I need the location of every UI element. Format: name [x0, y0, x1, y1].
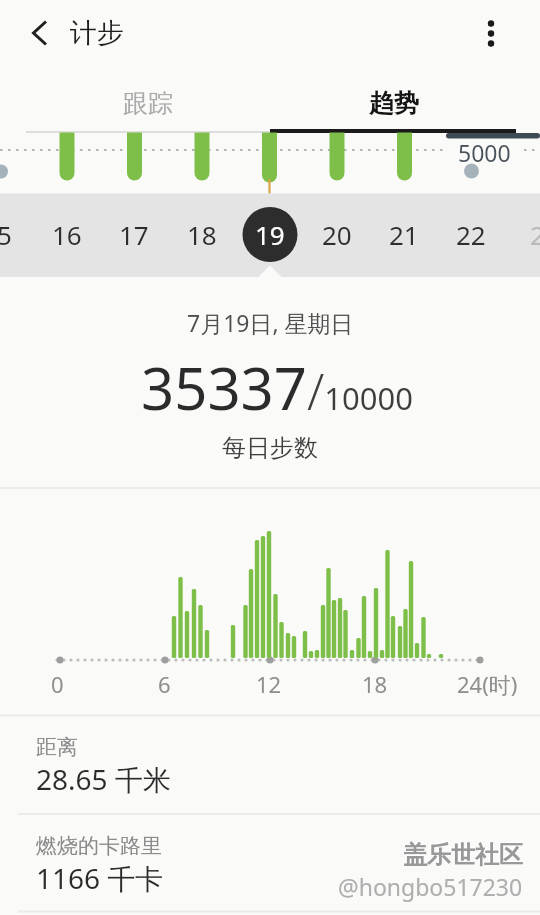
button[interactable] — [371, 194, 438, 277]
staticText: 20 — [322, 217, 352, 252]
button[interactable] — [0, 716, 540, 813]
staticText: 0 — [51, 669, 64, 699]
button[interactable] — [304, 194, 371, 277]
staticText: 21 — [389, 217, 419, 252]
staticText: 计步 — [70, 16, 124, 50]
button[interactable] — [0, 815, 540, 911]
button[interactable] — [506, 194, 540, 277]
staticText: 35337/10000 — [141, 348, 413, 427]
staticText: 17 — [119, 217, 149, 252]
staticText: 1166 千卡 — [36, 859, 164, 897]
button[interactable] — [270, 66, 540, 133]
button[interactable] — [468, 10, 516, 58]
staticText: @hongbo517230 — [338, 871, 523, 902]
staticText: 每日步数 — [222, 433, 318, 463]
staticText: 7月19日, 星期日 — [187, 307, 354, 338]
staticText: 24(时) — [457, 669, 518, 699]
button[interactable] — [16, 10, 64, 56]
button[interactable] — [438, 194, 505, 277]
staticText: 距离 — [36, 734, 78, 760]
staticText: 跟踪 — [123, 88, 173, 119]
staticText: 6 — [158, 669, 171, 699]
button[interactable] — [236, 194, 303, 277]
staticText: 5000 — [458, 137, 511, 168]
button[interactable] — [0, 194, 34, 277]
button[interactable] — [0, 66, 270, 133]
button[interactable] — [101, 194, 168, 277]
staticText: 12 — [256, 669, 282, 699]
staticText: 16 — [52, 217, 82, 252]
staticText: 22 — [456, 217, 486, 252]
button[interactable] — [169, 194, 236, 277]
staticText: 2 — [530, 217, 540, 252]
staticText: 18 — [187, 217, 217, 252]
staticText: 19 — [255, 217, 285, 252]
staticText: 5 — [0, 217, 12, 252]
staticText: 趋势 — [369, 88, 419, 119]
staticText: 盖乐世社区 — [403, 840, 523, 870]
staticText: 燃烧的卡路里 — [36, 833, 162, 859]
staticText: 18 — [362, 669, 388, 699]
staticText: 28.65 千米 — [36, 760, 171, 798]
button[interactable] — [34, 194, 101, 277]
